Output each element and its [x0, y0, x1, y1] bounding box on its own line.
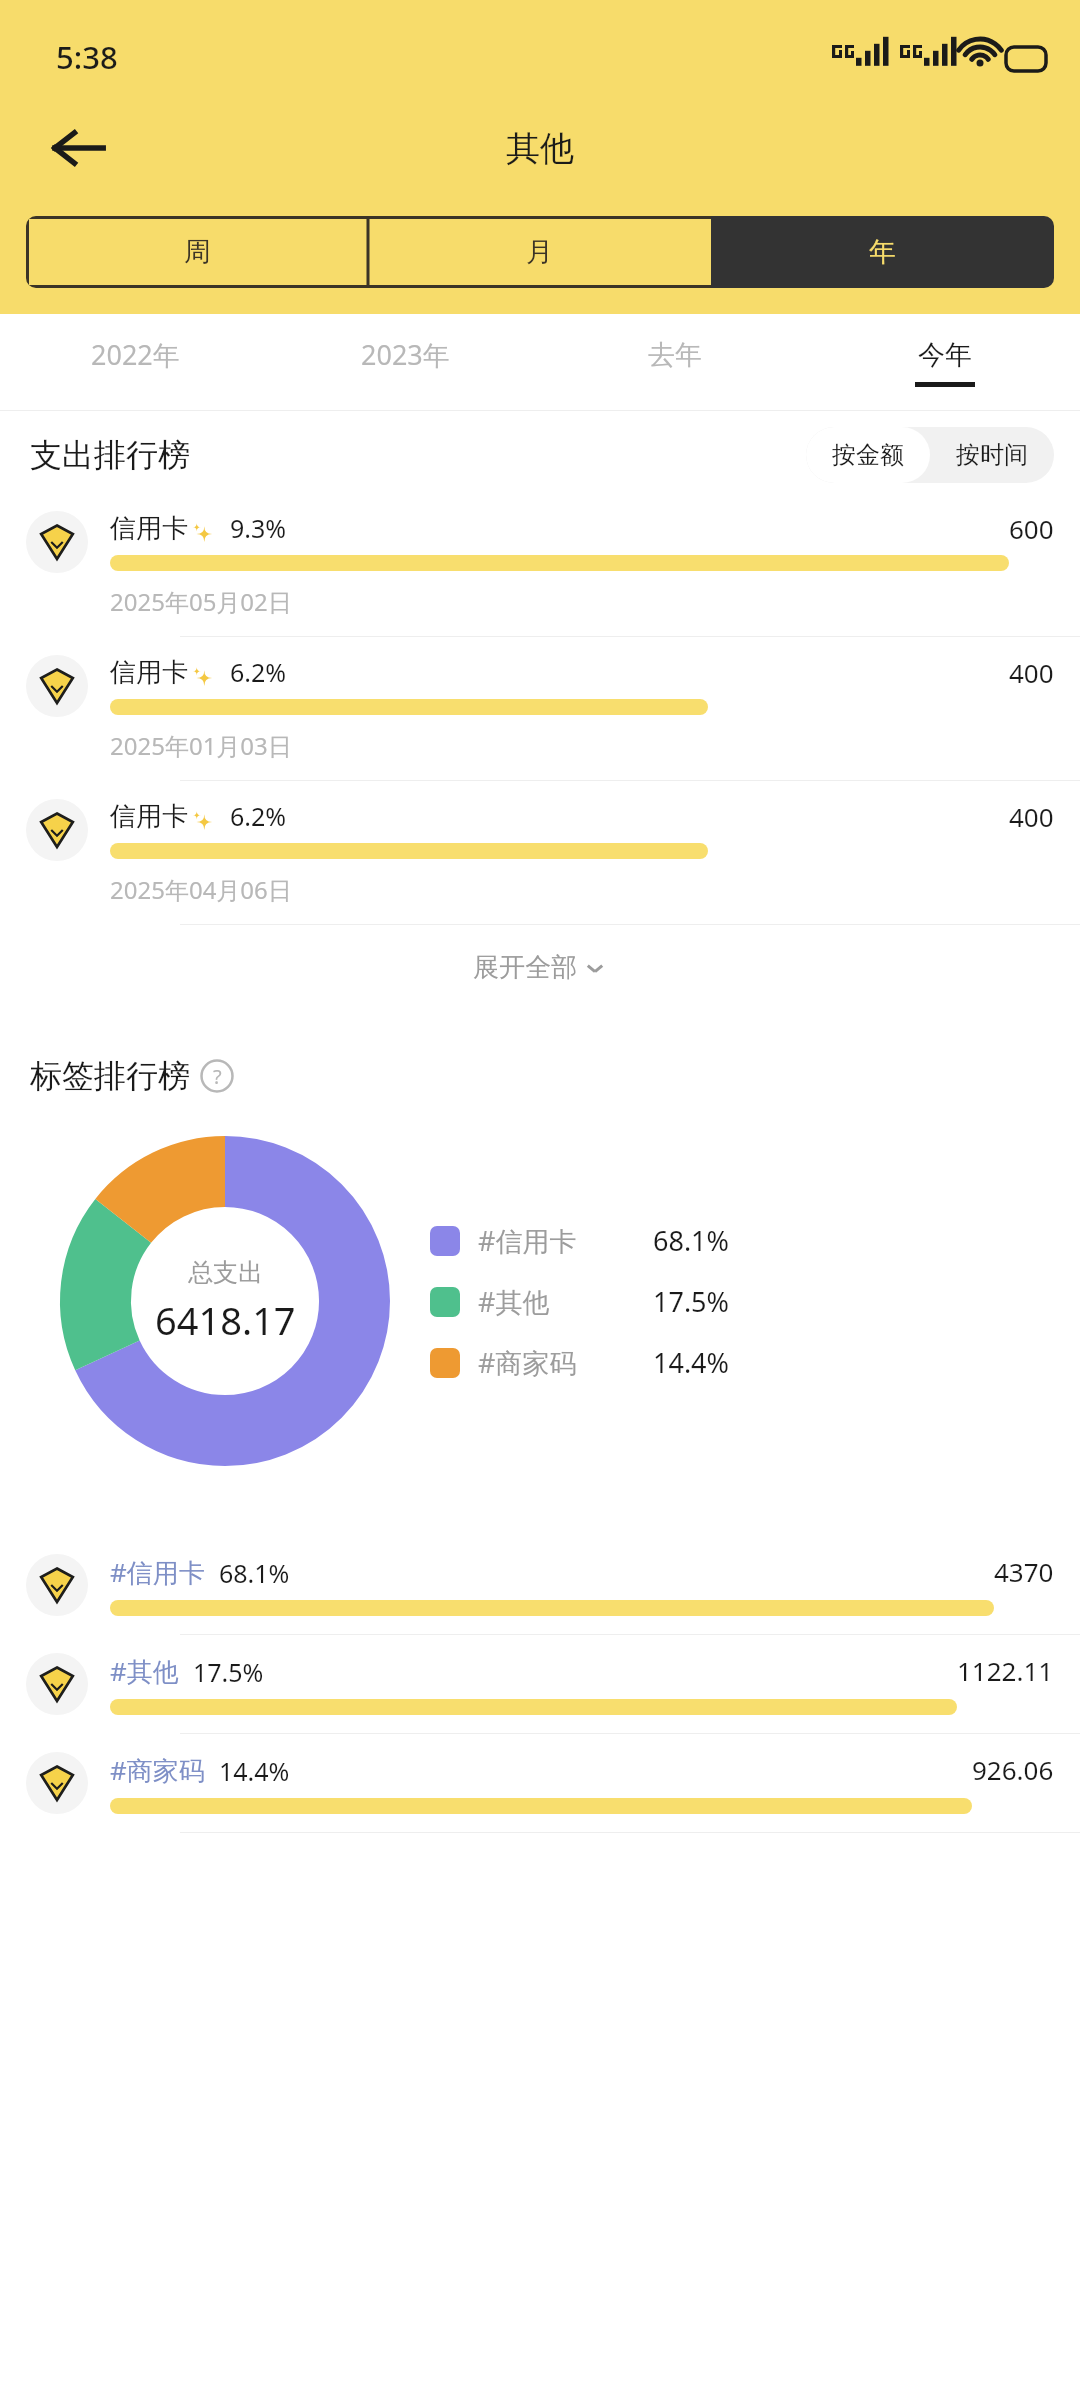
- button[interactable]: 去年: [540, 314, 810, 410]
- staticText: 400: [1009, 799, 1054, 834]
- staticText: 其他: [506, 127, 574, 170]
- staticText: 2023年: [361, 336, 450, 373]
- button[interactable]: 2023年: [270, 314, 540, 410]
- button[interactable]: 周: [26, 216, 368, 288]
- button[interactable]: Back: [42, 112, 114, 184]
- staticText: 总支出: [188, 1257, 263, 1288]
- button[interactable]: 展开全部: [0, 925, 1080, 1010]
- button[interactable]: #商家码: [0, 1734, 1080, 1832]
- staticText: 信用卡: [110, 800, 188, 833]
- button[interactable]: 按金额: [806, 427, 930, 483]
- staticText: ?: [213, 1063, 222, 1090]
- staticText: 按金额: [832, 440, 904, 470]
- staticText: 年: [869, 235, 896, 269]
- staticText: 2025年01月03日: [110, 729, 292, 762]
- staticText: 支出排行榜: [30, 435, 190, 475]
- staticText: #其他: [110, 1653, 179, 1689]
- staticText: 去年: [648, 338, 702, 372]
- button[interactable]: 月: [368, 216, 711, 288]
- staticText: 2025年05月02日: [110, 585, 292, 618]
- button[interactable]: #商家码: [430, 1332, 730, 1393]
- staticText: 14.4%: [653, 1344, 730, 1381]
- staticText: 信用卡: [110, 512, 188, 545]
- button[interactable]: #信用卡: [430, 1210, 730, 1271]
- button[interactable]: 按时间: [930, 427, 1054, 483]
- staticText: 标签排行榜: [30, 1056, 190, 1096]
- staticText: #其他: [478, 1283, 550, 1320]
- staticText: 68.1%: [219, 1556, 290, 1590]
- staticText: 9.3%: [230, 511, 287, 545]
- button[interactable]: Help: [200, 1059, 234, 1093]
- staticText: 周: [184, 235, 211, 269]
- staticText: 14.4%: [219, 1754, 290, 1788]
- button[interactable]: 信用卡: [0, 637, 1080, 780]
- staticText: #商家码: [478, 1344, 577, 1381]
- staticText: 月: [526, 235, 553, 269]
- staticText: 展开全部: [473, 951, 577, 984]
- button[interactable]: 2022年: [0, 314, 270, 410]
- staticText: 信用卡: [110, 656, 188, 689]
- staticText: 17.5%: [193, 1655, 264, 1689]
- staticText: 600: [1009, 511, 1054, 546]
- staticText: #商家码: [110, 1752, 205, 1788]
- staticText: 68.1%: [653, 1222, 730, 1259]
- button[interactable]: 今年: [810, 314, 1080, 410]
- staticText: 17.5%: [653, 1283, 730, 1320]
- button[interactable]: 信用卡: [0, 781, 1080, 924]
- staticText: 6418.17: [155, 1294, 296, 1346]
- staticText: 6.2%: [230, 655, 287, 689]
- button[interactable]: 年: [711, 216, 1054, 288]
- staticText: 1122.11: [957, 1653, 1054, 1688]
- staticText: 5:38: [56, 36, 118, 78]
- button[interactable]: #其他: [430, 1271, 730, 1332]
- button[interactable]: #其他: [0, 1635, 1080, 1733]
- staticText: 400: [1009, 655, 1054, 690]
- staticText: 6.2%: [230, 799, 287, 833]
- staticText: #信用卡: [478, 1222, 577, 1259]
- staticText: 4370: [994, 1554, 1054, 1589]
- staticText: #信用卡: [110, 1554, 205, 1590]
- button[interactable]: #信用卡: [0, 1536, 1080, 1634]
- staticText: 2022年: [91, 336, 180, 373]
- staticText: 926.06: [972, 1752, 1054, 1787]
- button[interactable]: 信用卡: [0, 493, 1080, 636]
- staticText: 按时间: [956, 440, 1028, 470]
- staticText: 2025年04月06日: [110, 873, 292, 906]
- staticText: 今年: [918, 338, 972, 372]
